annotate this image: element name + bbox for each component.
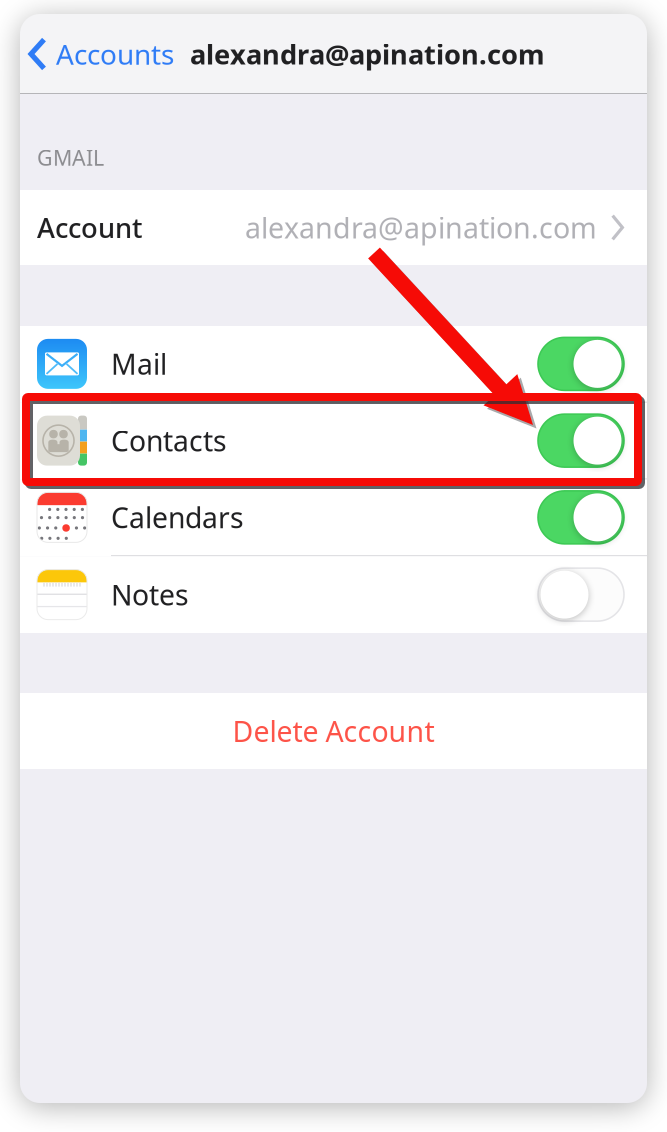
staticText: Mail [111, 345, 167, 383]
button[interactable]: Notes [20, 556, 647, 633]
staticText: GMAIL [37, 143, 104, 172]
button[interactable]: Accounts [28, 21, 174, 87]
button[interactable]: Delete Account [20, 693, 647, 769]
button[interactable]: Mail [20, 326, 647, 403]
button[interactable]: Contacts [20, 403, 647, 480]
staticText: Account [37, 209, 142, 246]
button[interactable]: Calendars [20, 479, 647, 556]
staticText: Accounts [56, 35, 174, 73]
staticText: Calendars [111, 498, 244, 537]
staticText: Contacts [111, 421, 227, 460]
staticText: alexandra@apination.com [190, 35, 545, 72]
staticText: Delete Account [232, 712, 434, 750]
staticText: alexandra@apination.com [245, 208, 597, 247]
button[interactable]: Account [20, 190, 647, 265]
staticText: Notes [111, 575, 189, 614]
